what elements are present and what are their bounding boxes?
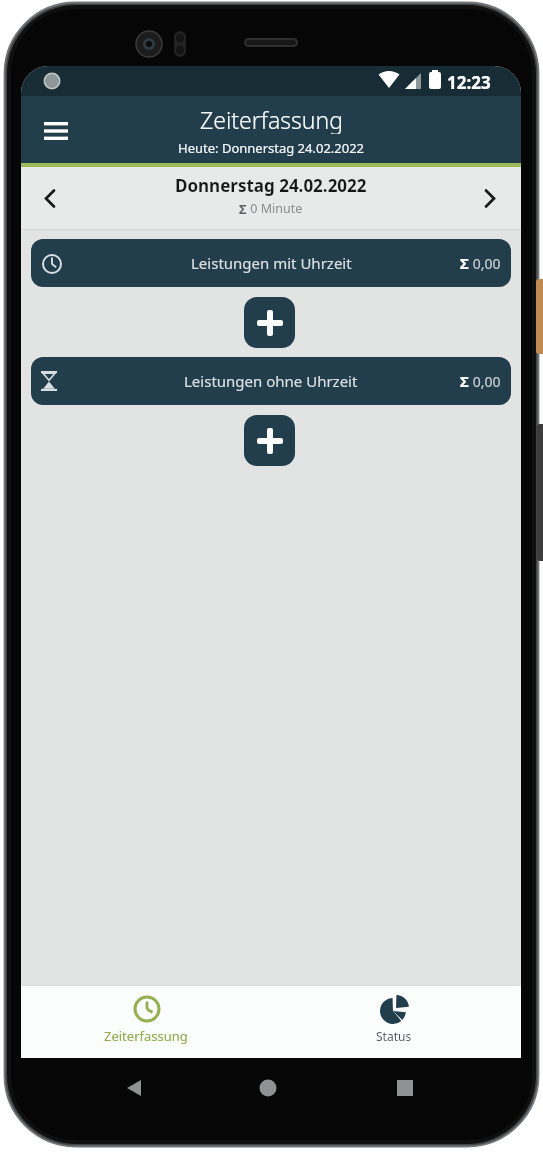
staticText: Zeiterfassung (104, 1027, 188, 1045)
button[interactable]: Leistungen ohne Uhrzeit (31, 357, 511, 405)
staticText: Donnerstag 24.02.2022 (175, 174, 367, 197)
staticText: 0,00 (469, 254, 501, 273)
staticText: Heute: Donnerstag 24.02.2022 (178, 139, 365, 157)
staticText: Leistungen mit Uhrzeit (191, 253, 352, 273)
staticText: 0,00 (469, 372, 501, 391)
button[interactable] (244, 415, 295, 466)
staticText: Σ (460, 253, 469, 273)
staticText: Status (376, 1028, 412, 1044)
button[interactable] (474, 182, 506, 214)
button[interactable]: Zeiterfassung (46, 986, 246, 1058)
staticText: Zeiterfassung (200, 104, 343, 134)
staticText: Leistungen ohne Uhrzeit (184, 371, 358, 391)
button[interactable] (38, 113, 74, 149)
staticText: Σ (239, 200, 247, 218)
button[interactable]: Status (294, 986, 494, 1058)
staticText: 12:23 (447, 71, 491, 94)
staticText: Σ (460, 371, 469, 391)
button[interactable] (244, 297, 295, 348)
staticText: 0 Minute (247, 200, 303, 217)
button[interactable] (34, 182, 66, 214)
button[interactable]: Leistungen mit Uhrzeit (31, 239, 511, 287)
